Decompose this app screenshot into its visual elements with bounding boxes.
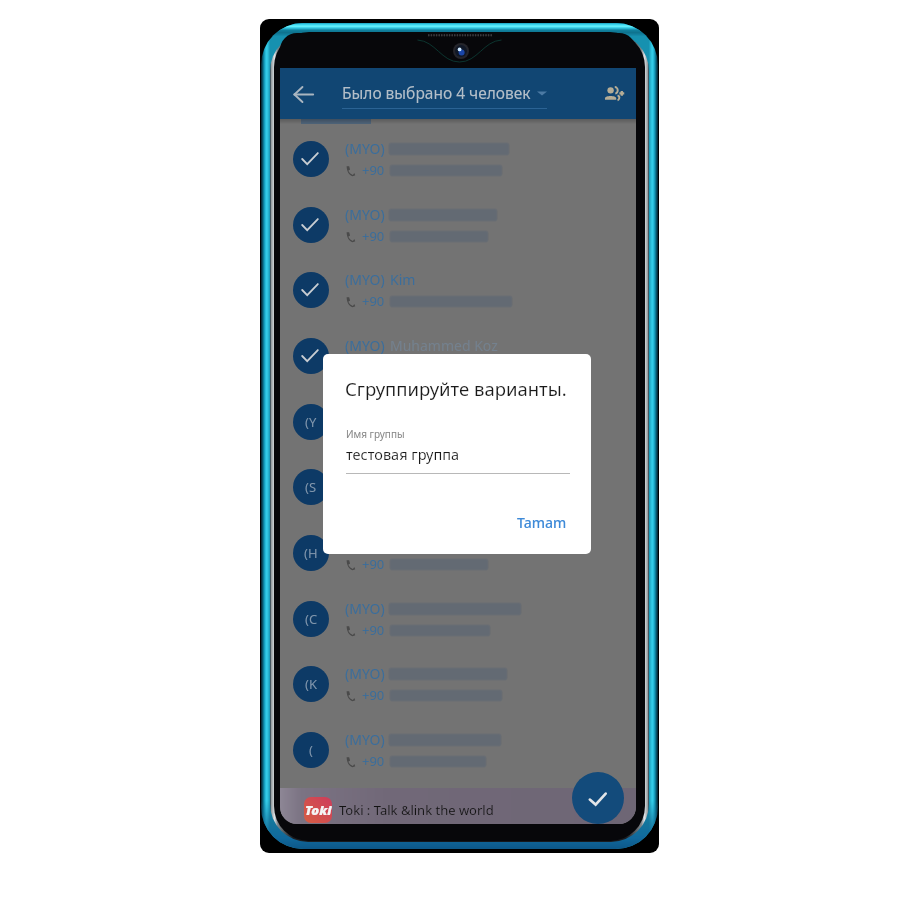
staticText: (Y	[305, 413, 317, 431]
staticText: (S	[305, 478, 317, 496]
staticText: +90	[362, 292, 385, 310]
staticText: Tamam	[517, 513, 567, 532]
button[interactable]: Confirm selection	[572, 772, 624, 824]
staticText: (MYO)	[345, 599, 385, 618]
staticText: Сгруппируйте варианты.	[345, 376, 567, 401]
staticText: (C	[305, 610, 318, 628]
button[interactable]: Tamam	[517, 513, 567, 532]
staticText: (	[309, 741, 313, 759]
staticText: Имя группы	[346, 427, 405, 441]
button[interactable]: (MYO)	[280, 126, 636, 192]
button[interactable]: (S	[280, 454, 636, 520]
staticText: Было выбрано 4 человек	[342, 82, 531, 103]
button[interactable]: Back	[286, 77, 320, 111]
button[interactable]: Было выбрано 4 человек	[342, 74, 554, 114]
staticText: (K	[305, 675, 317, 693]
staticText: +90	[362, 555, 385, 573]
button[interactable]: (MYO)	[280, 257, 636, 323]
button[interactable]: (Y	[280, 389, 636, 455]
staticText: (MYO)	[345, 336, 385, 355]
staticText: Toki : Talk &link the world	[339, 801, 494, 819]
staticText: Muhammed Koz	[390, 336, 498, 355]
button[interactable]: (K	[280, 651, 636, 717]
staticText: (MYO)	[345, 467, 385, 486]
staticText: +90	[362, 161, 385, 179]
button[interactable]: Toki	[280, 788, 636, 824]
staticText: (MYO)	[345, 139, 385, 158]
staticText: +90	[362, 424, 385, 442]
staticText: (MYO)	[345, 730, 385, 749]
staticText: +90	[362, 621, 385, 639]
staticText: (MYO)	[345, 270, 385, 289]
staticText: +90	[362, 752, 385, 770]
staticText: Kim	[390, 270, 416, 289]
staticText: Toki	[305, 801, 332, 819]
staticText: тестовая группа	[346, 444, 460, 464]
button[interactable]: (C	[280, 586, 636, 652]
button[interactable]: Сгруппируйте варианты.	[323, 354, 591, 554]
button[interactable]: (H	[280, 520, 636, 586]
staticText: +90	[362, 227, 385, 245]
staticText: (MYO)	[345, 664, 385, 683]
staticText: (H	[304, 544, 318, 562]
button[interactable]: (MYO)	[280, 192, 636, 258]
staticText: +90	[362, 686, 385, 704]
button[interactable]: Add people	[592, 72, 636, 116]
button[interactable]: (MYO)	[280, 323, 636, 389]
staticText: (MYO)	[345, 205, 385, 224]
button[interactable]: (	[280, 717, 636, 783]
